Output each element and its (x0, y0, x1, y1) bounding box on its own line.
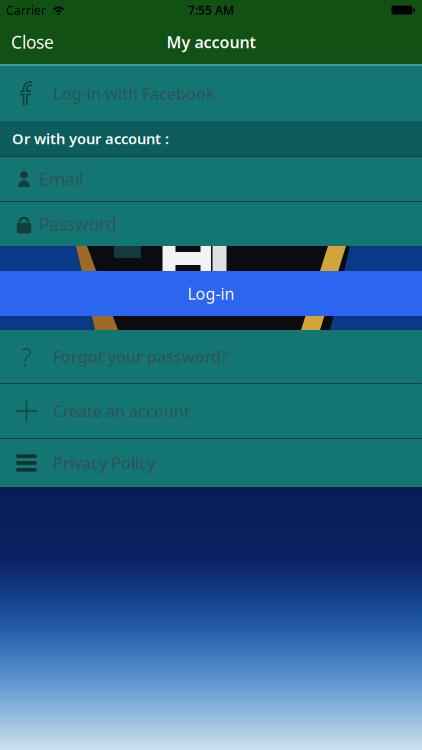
staticText: Forgot your password? (53, 346, 228, 367)
button[interactable]: Password (0, 202, 422, 246)
staticText: ? (21, 340, 32, 373)
button[interactable]: Privacy Policy (0, 439, 422, 487)
staticText: Email (39, 167, 83, 190)
button[interactable]: Create an account (0, 384, 422, 438)
button[interactable]: ? (0, 330, 422, 383)
staticText: Log-in (187, 283, 234, 304)
staticText: My account (166, 31, 255, 53)
button[interactable]: Close (0, 30, 54, 53)
staticText: Or with your account : (12, 129, 169, 148)
staticText: 7:55 AM (188, 2, 234, 18)
staticText: Log-in with Facebook (53, 83, 215, 104)
staticText: Privacy Policy (53, 452, 155, 474)
button[interactable]: Email (0, 157, 422, 201)
staticText: Create an account (53, 400, 190, 422)
button[interactable]: Log-in (0, 271, 422, 316)
button[interactable]: Log-in with Facebook (0, 66, 422, 121)
staticText: Carrier (6, 2, 46, 18)
staticText: Password (39, 212, 117, 235)
staticText: Close (11, 30, 54, 53)
